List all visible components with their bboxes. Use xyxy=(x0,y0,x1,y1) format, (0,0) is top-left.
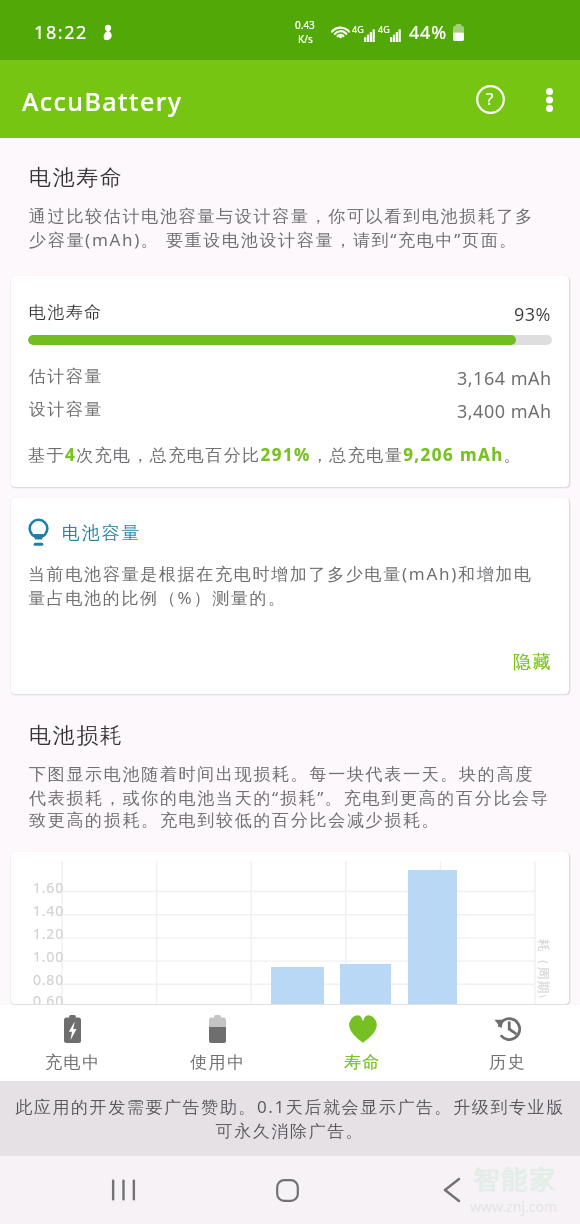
button[interactable]: Back xyxy=(422,1160,482,1220)
staticText: 期 xyxy=(537,980,551,993)
staticText: 基于4次充电，总充电百分比291%，总充电量9,206 mAh。 xyxy=(28,443,523,466)
staticText: 电池损耗 xyxy=(29,722,124,750)
staticText: 电池容量 xyxy=(62,522,142,545)
staticText: 充电中 xyxy=(45,1052,101,1073)
staticText: 0.60 xyxy=(33,991,64,1004)
staticText: 寿命 xyxy=(344,1052,382,1073)
staticText: 估计容量 xyxy=(28,366,102,387)
staticText: 0.80 xyxy=(33,970,64,989)
staticText: 智能家 xyxy=(472,1164,556,1197)
staticText: ? xyxy=(486,87,494,110)
staticText: 93% xyxy=(514,302,552,327)
staticText: 44% xyxy=(409,20,447,45)
staticText: K/s xyxy=(298,32,313,46)
staticText: 1.20 xyxy=(33,924,64,943)
button[interactable]: 此应用的开发需要广告赞助。0.1天后就会显示广告。升级到专业版可永久消除广告。 xyxy=(0,1081,580,1156)
staticText: 此应用的开发需要广告赞助。0.1天后就会显示广告。升级到专业版可永久消除广告。 xyxy=(14,1095,566,1142)
staticText: ） xyxy=(539,992,549,1004)
staticText: www.znj.com xyxy=(470,1197,558,1216)
button[interactable]: 使用中 xyxy=(145,1005,290,1081)
button[interactable]: Home xyxy=(257,1160,317,1220)
button[interactable]: 隐藏 xyxy=(513,651,552,674)
staticText: 历史 xyxy=(489,1052,527,1073)
button[interactable]: 电池容量 xyxy=(11,498,569,694)
staticText: 周 xyxy=(537,966,551,979)
staticText: 1.00 xyxy=(33,947,64,966)
staticText: 3,400 mAh xyxy=(457,399,552,424)
staticText: 通过比较估计电池容量与设计容量，你可以看到电池损耗了多少容量(mAh)。 要重设… xyxy=(29,206,551,251)
staticText: 1.40 xyxy=(33,901,64,920)
staticText: 设计容量 xyxy=(28,399,102,420)
staticText: （ xyxy=(537,952,551,965)
staticText: 3,164 mAh xyxy=(457,366,552,391)
staticText: 耗 xyxy=(537,938,551,951)
staticText: 电池寿命 xyxy=(29,164,124,192)
staticText: 隐藏 xyxy=(513,651,552,674)
button[interactable]: Help xyxy=(462,71,518,127)
button[interactable]: More options xyxy=(521,72,577,128)
staticText: 下图显示电池随着时间出现损耗。每一块代表一天。块的高度代表损耗，或你的电池当天的… xyxy=(29,764,551,831)
staticText: 18:22 xyxy=(34,20,89,45)
staticText: 4G xyxy=(352,23,364,35)
button[interactable]: 历史 xyxy=(435,1005,580,1081)
button[interactable]: Recents xyxy=(93,1160,153,1220)
staticText: 0.43 xyxy=(295,18,315,32)
button[interactable]: 寿命 xyxy=(290,1005,435,1081)
button[interactable]: 电池寿命 xyxy=(11,276,569,487)
staticText: 1.60 xyxy=(33,878,64,897)
staticText: 4G xyxy=(378,23,390,35)
staticText: 当前电池容量是根据在充电时增加了多少电量(mAh)和增加电量占电池的比例（%）测… xyxy=(28,562,547,609)
staticText: AccuBattery xyxy=(22,84,183,118)
staticText: 使用中 xyxy=(190,1052,246,1073)
staticText: 电池寿命 xyxy=(28,302,102,323)
button[interactable]: 充电中 xyxy=(0,1005,145,1081)
